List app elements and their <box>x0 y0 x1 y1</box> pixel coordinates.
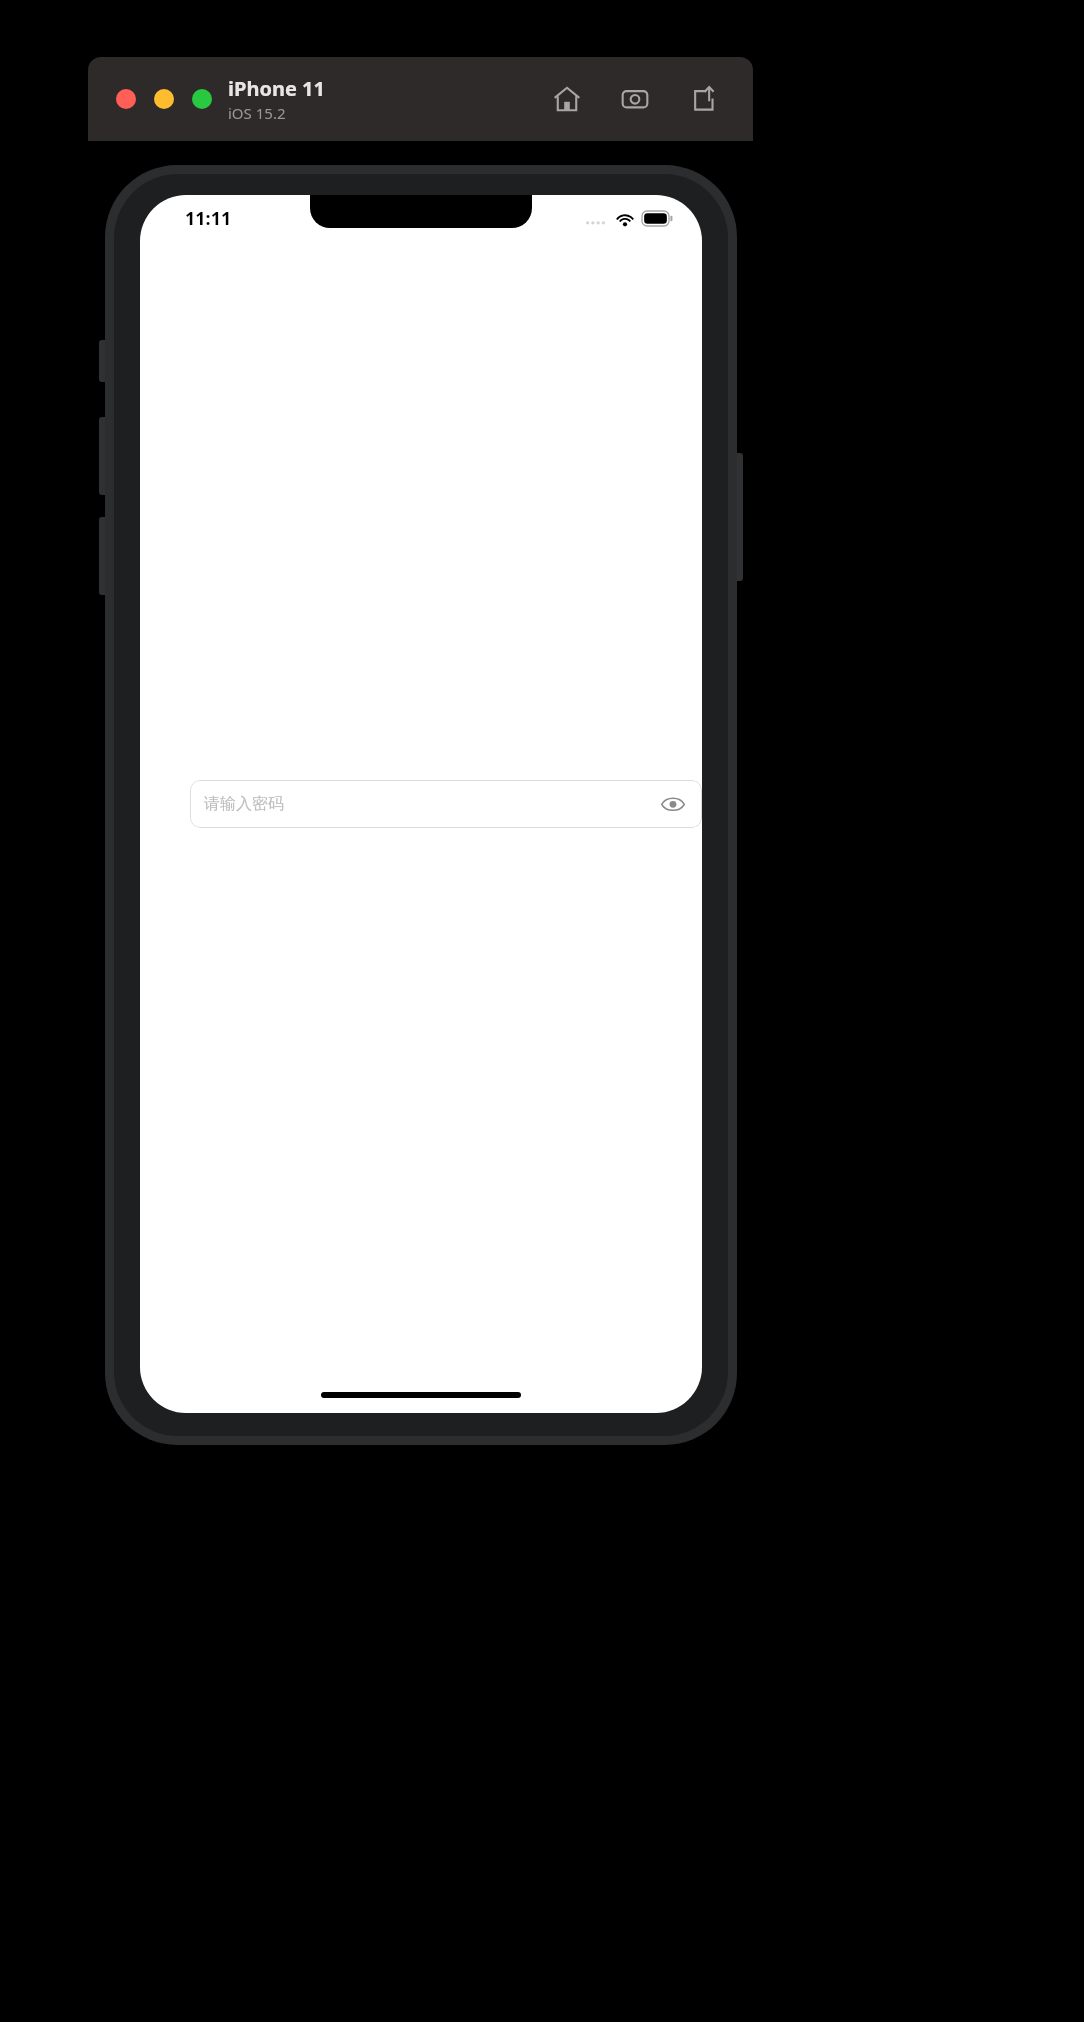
staticText: iOS 15.2 <box>228 103 286 123</box>
staticText: 11:11 <box>185 206 232 231</box>
button[interactable]: 请输入密码 <box>190 780 702 828</box>
button[interactable]: Record screen <box>685 81 721 117</box>
staticText: iPhone 11 <box>228 75 325 102</box>
button[interactable]: Minimize <box>154 89 174 109</box>
button[interactable]: Show password <box>658 789 688 819</box>
button[interactable]: Close <box>116 89 136 109</box>
staticText: 请输入密码 <box>204 794 658 814</box>
button[interactable]: Home <box>549 81 585 117</box>
button[interactable]: Screenshot <box>617 81 653 117</box>
button[interactable]: Maximize <box>192 89 212 109</box>
